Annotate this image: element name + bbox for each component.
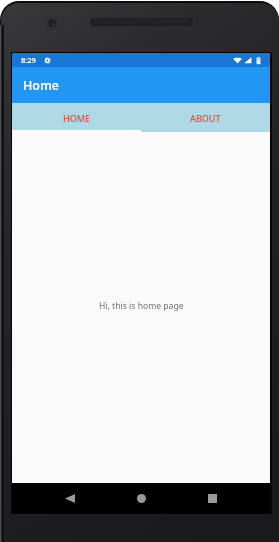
button[interactable]: HOME <box>12 103 141 132</box>
button[interactable]: Home <box>128 483 154 513</box>
staticText: ABOUT <box>190 112 221 124</box>
button[interactable]: ABOUT <box>141 103 270 132</box>
staticText: 8:29 <box>21 55 36 65</box>
button[interactable]: Back <box>57 483 83 513</box>
staticText: HOME <box>63 112 91 124</box>
button[interactable]: Recent apps <box>199 483 225 513</box>
staticText: Home <box>23 77 60 94</box>
staticText: Hi, this is home page <box>99 300 184 312</box>
